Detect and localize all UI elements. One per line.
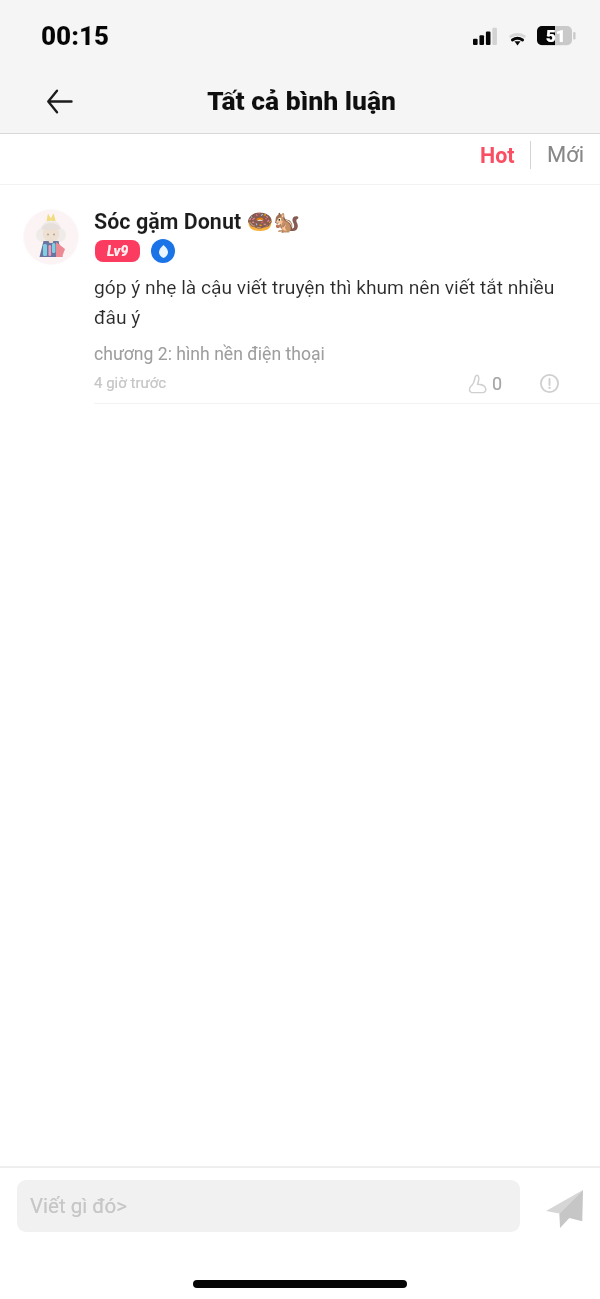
staticText: Mới: [547, 142, 585, 168]
staticText: 51: [546, 26, 566, 46]
staticText: chương 2: hình nền điện thoại: [94, 344, 325, 365]
button[interactable]: Back: [27, 69, 91, 133]
staticText: Sóc gặm Donut 🍩🐿️: [94, 209, 301, 234]
button[interactable]: Send: [535, 1180, 593, 1238]
staticText: 4 giờ trước: [94, 374, 167, 392]
staticText: Lv9: [107, 243, 129, 259]
staticText: 00:15: [41, 21, 110, 51]
button[interactable]: Sóc gặm Donut 🍩🐿️: [0, 185, 600, 404]
button[interactable]: Hot: [472, 135, 523, 176]
button[interactable]: 0: [468, 369, 503, 398]
staticText: 0: [492, 373, 503, 394]
button[interactable]: Report: [534, 368, 564, 398]
button[interactable]: Mới: [539, 134, 593, 176]
staticText: Hot: [480, 143, 515, 168]
staticText: Tất cả bình luận: [207, 85, 397, 116]
staticText: Viết gì đó>: [30, 1194, 128, 1218]
button[interactable]: Viết gì đó>: [17, 1180, 520, 1232]
staticText: góp ý nhẹ là cậu viết truyện thì khum nê…: [94, 276, 564, 328]
